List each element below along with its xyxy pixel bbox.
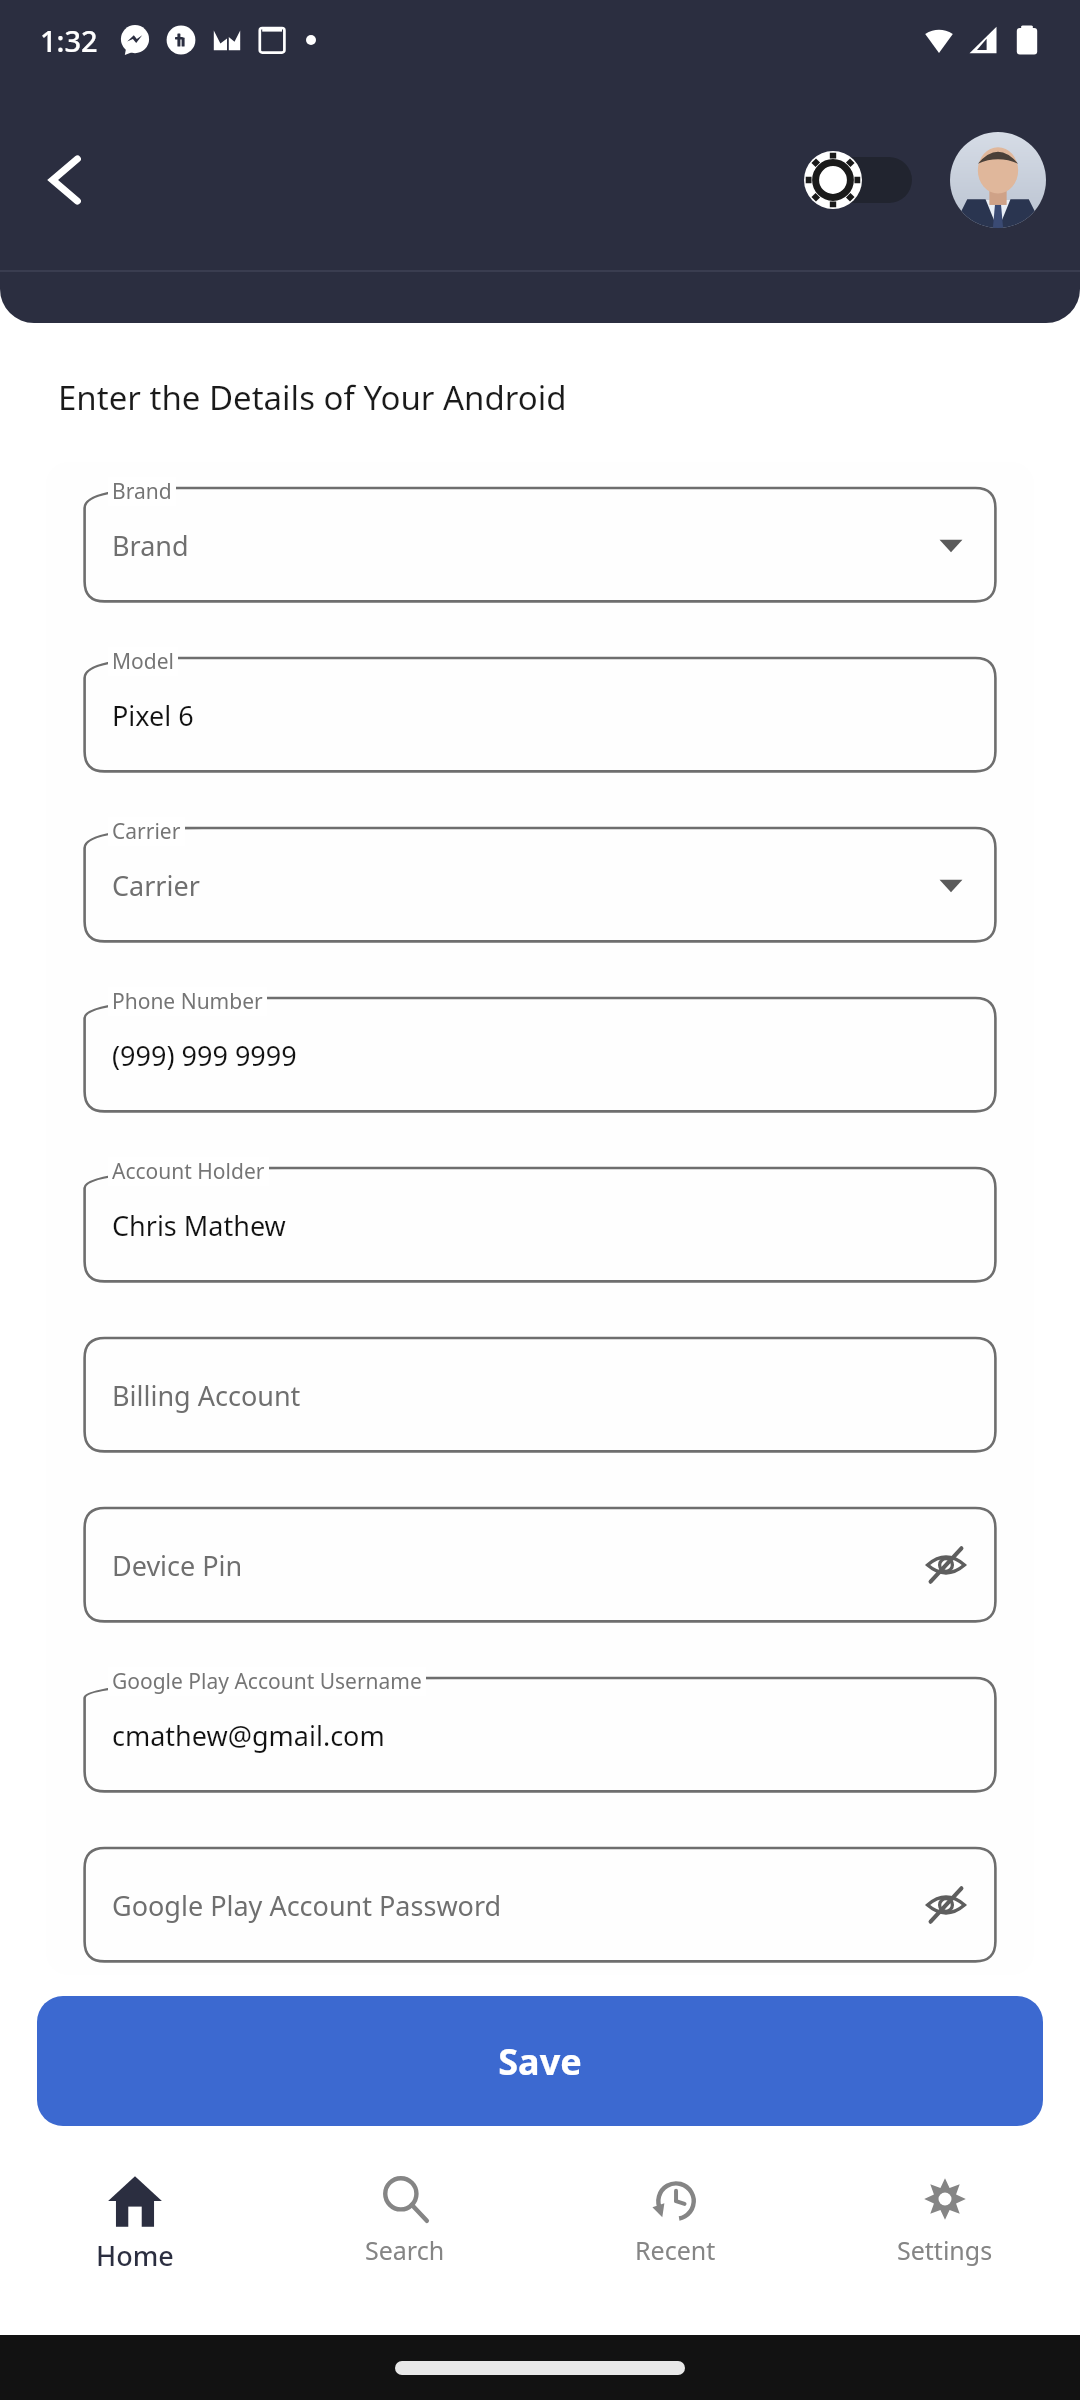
staticText: Billing Account	[112, 1377, 301, 1414]
button[interactable]: Open dropdown	[938, 872, 964, 898]
button[interactable]: Device Pin	[82, 1498, 998, 1624]
button[interactable]: Search	[270, 2165, 540, 2267]
staticText: Recent	[635, 2233, 716, 2267]
staticText: Phone Number	[112, 987, 263, 1016]
button[interactable]: Account Holder	[82, 1158, 998, 1284]
staticText: Carrier	[112, 817, 181, 846]
staticText: Model	[112, 647, 174, 676]
button[interactable]: Show password	[924, 1543, 968, 1587]
staticText: Save	[498, 2037, 582, 2086]
staticText: Brand	[112, 527, 189, 564]
button[interactable]: Profile	[950, 132, 1046, 228]
staticText: Google Play Account Password	[112, 1887, 502, 1924]
staticText: Device Pin	[112, 1547, 243, 1584]
button[interactable]: Settings	[810, 2165, 1080, 2267]
button[interactable]: Show password	[924, 1883, 968, 1927]
button[interactable]: Open dropdown	[938, 532, 964, 558]
staticText: 1:32	[40, 21, 98, 60]
button[interactable]: Google Play Account Password	[82, 1838, 998, 1964]
button[interactable]: Home	[0, 2165, 270, 2274]
button[interactable]: Billing Account	[82, 1328, 998, 1454]
staticText: Search	[365, 2233, 445, 2267]
staticText: Pixel 6	[112, 697, 194, 734]
button[interactable]: Google Play Account Username	[82, 1668, 998, 1794]
staticText: cmathew@gmail.com	[112, 1717, 385, 1754]
staticText: Account Holder	[112, 1157, 265, 1186]
staticText: Brand	[112, 477, 172, 506]
button[interactable]: Model	[82, 648, 998, 774]
button[interactable]: Save	[37, 1996, 1043, 2126]
button[interactable]: Toggle theme	[804, 151, 912, 209]
staticText: (999) 999 9999	[112, 1037, 297, 1074]
button[interactable]: Recent	[540, 2165, 810, 2267]
staticText: Chris Mathew	[112, 1207, 286, 1244]
button[interactable]: Brand	[82, 478, 998, 604]
button[interactable]: Phone Number	[82, 988, 998, 1114]
staticText: Home	[96, 2237, 174, 2274]
staticText: Settings	[897, 2233, 993, 2267]
staticText: Carrier	[112, 867, 200, 904]
staticText: Enter the Details of Your Android	[58, 375, 567, 420]
button[interactable]: Back	[34, 149, 96, 211]
button[interactable]: Carrier	[82, 818, 998, 944]
staticText: Google Play Account Username	[112, 1667, 422, 1696]
